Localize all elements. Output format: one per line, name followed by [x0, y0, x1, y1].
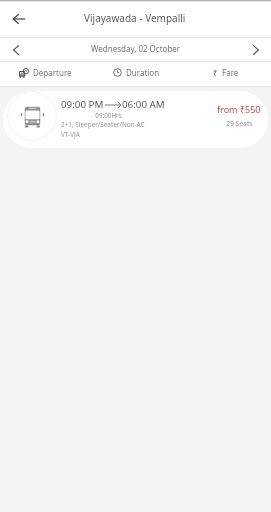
- staticText: 29 Seats: [226, 119, 253, 128]
- staticText: 06:00 AM: [122, 98, 165, 111]
- staticText: Vijayawada - Vempalli: [84, 11, 186, 25]
- button[interactable]: 09:00 PM: [3, 91, 268, 148]
- staticText: from ₹550: [217, 103, 261, 115]
- staticText: 2+1, Sleeper/Seater/Non-AC: [61, 120, 145, 129]
- button[interactable]: Previous day: [0, 38, 31, 62]
- staticText: 09:00Hrs: [59, 111, 158, 120]
- staticText: 09:00 PM: [61, 98, 104, 111]
- staticText: Departure: [33, 67, 72, 78]
- staticText: ₹: [213, 67, 218, 78]
- button[interactable]: Next day: [240, 38, 271, 62]
- button[interactable]: ₹: [181, 67, 271, 78]
- button[interactable]: Duration: [91, 67, 181, 78]
- button[interactable]: Departure: [0, 67, 91, 78]
- staticText: Fare: [222, 67, 239, 78]
- staticText: Wednesday, 02 October: [91, 43, 181, 54]
- button[interactable]: Back: [0, 0, 38, 38]
- staticText: VT-VJA: [61, 130, 80, 139]
- staticText: Duration: [126, 67, 160, 78]
